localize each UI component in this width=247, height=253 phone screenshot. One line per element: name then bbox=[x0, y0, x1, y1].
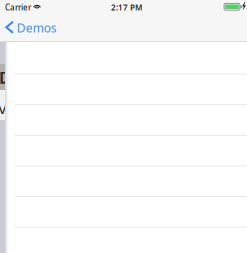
staticText: Carrier bbox=[5, 2, 31, 13]
staticText: 2:17 PM bbox=[111, 2, 142, 13]
staticText: Demos bbox=[17, 20, 57, 36]
button[interactable]: Demos bbox=[0, 15, 62, 41]
staticText: Vi bbox=[0, 99, 11, 118]
staticText: De bbox=[0, 67, 21, 88]
